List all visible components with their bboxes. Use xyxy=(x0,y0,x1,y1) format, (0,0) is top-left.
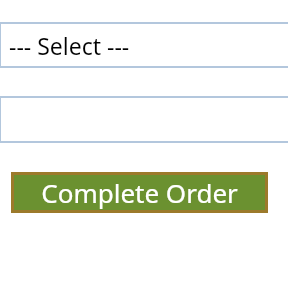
button[interactable]: Complete Order xyxy=(14,175,265,210)
staticText: Complete Order xyxy=(41,175,238,210)
button[interactable]: Select option xyxy=(0,22,288,68)
button[interactable]: Text input field xyxy=(0,96,288,143)
staticText: --- Select --- xyxy=(9,30,130,61)
